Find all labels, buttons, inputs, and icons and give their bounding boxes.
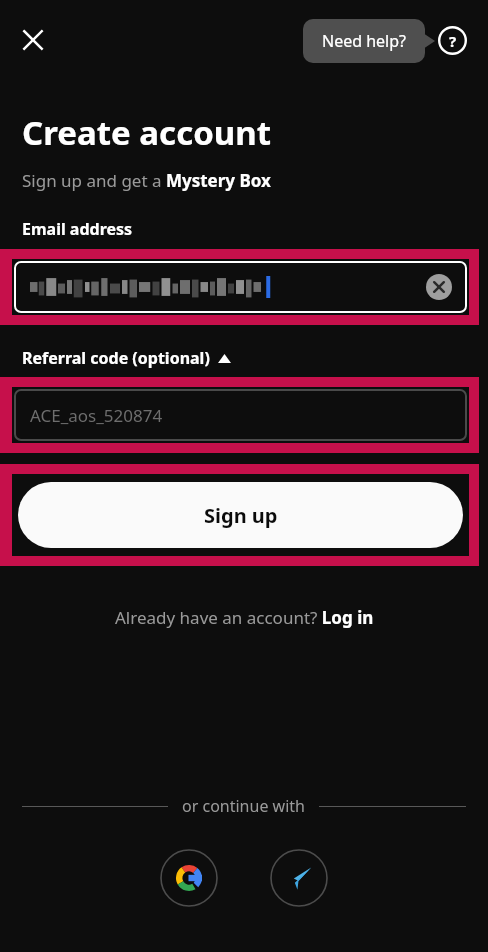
button[interactable]: Clear text <box>14 261 467 313</box>
staticText: or continue with <box>182 795 305 817</box>
button[interactable]: Referral code (optional) <box>22 347 231 369</box>
button[interactable]: Close <box>12 19 54 61</box>
staticText: Sign up and get a Mystery Box <box>22 169 271 192</box>
button[interactable]: Sign up <box>18 482 463 548</box>
staticText: Email address <box>22 218 133 240</box>
staticText: Need help? <box>322 30 407 52</box>
staticText: Already have an account? Log in <box>115 606 374 629</box>
button[interactable]: Clear text <box>423 271 455 303</box>
staticText: Create account <box>22 110 272 155</box>
button[interactable]: ACE_aos_520874 <box>14 389 467 441</box>
staticText: Referral code (optional) <box>22 347 210 369</box>
staticText: ACE_aos_520874 <box>30 404 163 427</box>
button[interactable]: Continue with Telegram <box>270 849 328 907</box>
staticText: Sign up <box>204 502 278 529</box>
button[interactable]: Continue with Google <box>160 849 218 907</box>
button[interactable]: Need help? <box>303 19 425 63</box>
button[interactable]: Need help <box>431 19 473 61</box>
staticText: ? <box>449 31 457 51</box>
button[interactable]: Already have an account? Log in <box>109 604 380 631</box>
